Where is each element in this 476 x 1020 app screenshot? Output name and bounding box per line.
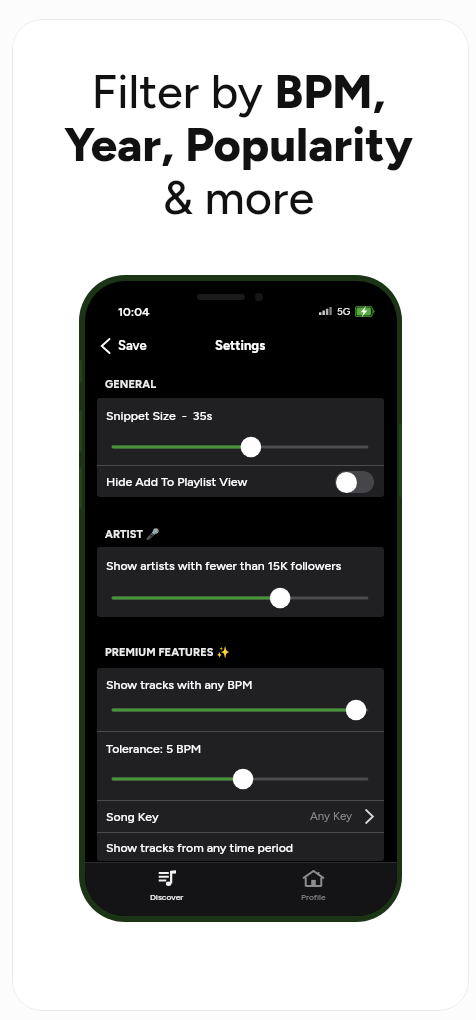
staticText: Any Key <box>310 809 353 823</box>
staticText: PREMIUM FEATURES ✨ <box>105 646 231 659</box>
staticText: Show tracks with any BPM <box>106 677 253 692</box>
button[interactable]: Show tracks from any time period <box>97 833 384 861</box>
button[interactable]: Hide Add To Playlist View toggle <box>335 471 374 493</box>
staticText: Show artists with fewer than 15K followe… <box>106 558 342 573</box>
staticText: Save <box>118 338 147 354</box>
button[interactable]: Save <box>85 333 159 359</box>
button[interactable]: Profile <box>277 864 349 908</box>
staticText: Show tracks from any time period <box>106 840 294 855</box>
staticText: Hide Add To Playlist View <box>106 474 248 489</box>
button[interactable]: Discover <box>131 864 203 908</box>
staticText: 10:04 <box>118 305 150 319</box>
staticText: GENERAL <box>105 378 157 391</box>
staticText: Song Key <box>106 809 159 824</box>
button[interactable]: Hide Add To Playlist View <box>97 466 384 497</box>
staticText: 5G <box>337 305 351 317</box>
staticText: ARTIST 🎤 <box>105 528 160 541</box>
staticText: Settings <box>215 338 266 354</box>
staticText: Snippet Size - 35s <box>106 408 213 423</box>
staticText: Discover <box>150 892 184 902</box>
staticText: Tolerance: 5 BPM <box>106 741 202 756</box>
staticText: Profile <box>301 892 326 902</box>
button[interactable]: Song Key <box>97 801 384 831</box>
staticText: Filter by BPM, Year, Popularity & more <box>12 63 467 226</box>
